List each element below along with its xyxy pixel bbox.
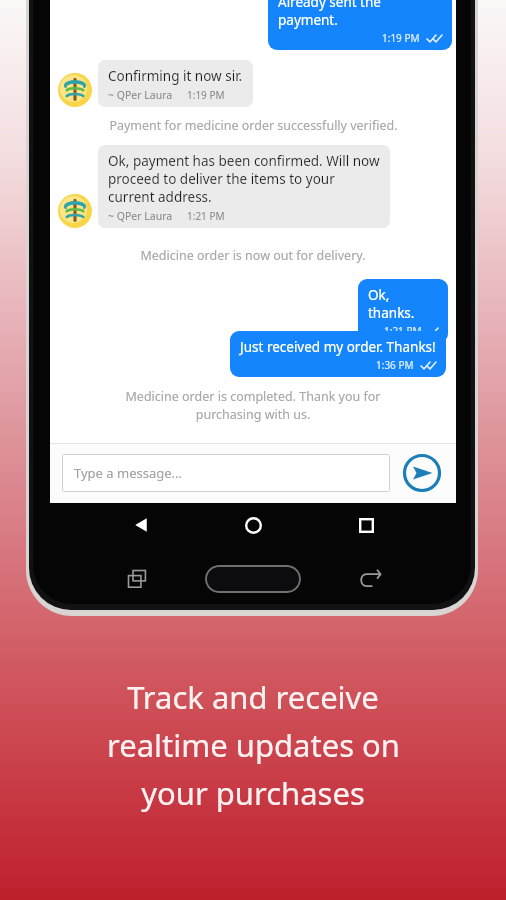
button[interactable]: Already sent the payment. bbox=[268, 0, 452, 50]
staticText: your purchases bbox=[141, 772, 365, 814]
staticText: ~ QPer Laura bbox=[108, 209, 173, 223]
staticText: Payment for medicine order successfully … bbox=[109, 117, 398, 134]
staticText: Ok, thanks. bbox=[368, 286, 438, 322]
staticText: 1:19 PM bbox=[382, 31, 420, 45]
button[interactable]: Ok, payment has been confirmed. Will now… bbox=[98, 145, 390, 228]
button[interactable]: Back bbox=[350, 559, 390, 599]
staticText: ~ QPer Laura bbox=[108, 88, 173, 102]
button[interactable]: Type a message... bbox=[62, 454, 390, 492]
button[interactable]: Home bbox=[231, 503, 275, 547]
staticText: Just received my order. Thanks! bbox=[240, 338, 436, 356]
staticText: realtime updates on bbox=[107, 724, 400, 766]
button[interactable]: Home button bbox=[205, 565, 301, 593]
button[interactable]: Overview bbox=[117, 559, 157, 599]
staticText: Already sent the payment. bbox=[278, 0, 442, 29]
staticText: Confirming it now sir. bbox=[108, 67, 243, 85]
button[interactable]: Just received my order. Thanks! bbox=[230, 331, 446, 377]
button[interactable]: Confirming it now sir. bbox=[98, 60, 253, 107]
button[interactable]: Send bbox=[400, 451, 444, 495]
staticText: Ok, payment has been confirmed. Will now… bbox=[108, 152, 380, 206]
button[interactable]: Back bbox=[119, 503, 163, 547]
staticText: 1:19 PM bbox=[187, 88, 225, 102]
button[interactable]: Ok, thanks. bbox=[358, 279, 448, 343]
staticText: 1:36 PM bbox=[376, 358, 414, 372]
staticText: 1:21 PM bbox=[384, 324, 422, 338]
button[interactable]: Recents bbox=[344, 503, 388, 547]
staticText: Medicine order is now out for delivery. bbox=[140, 247, 366, 264]
staticText: Type a message... bbox=[74, 464, 182, 482]
staticText: 1:21 PM bbox=[187, 209, 225, 223]
staticText: Track and receive bbox=[127, 676, 379, 718]
staticText: Medicine order is completed. Thank you f… bbox=[92, 388, 414, 423]
